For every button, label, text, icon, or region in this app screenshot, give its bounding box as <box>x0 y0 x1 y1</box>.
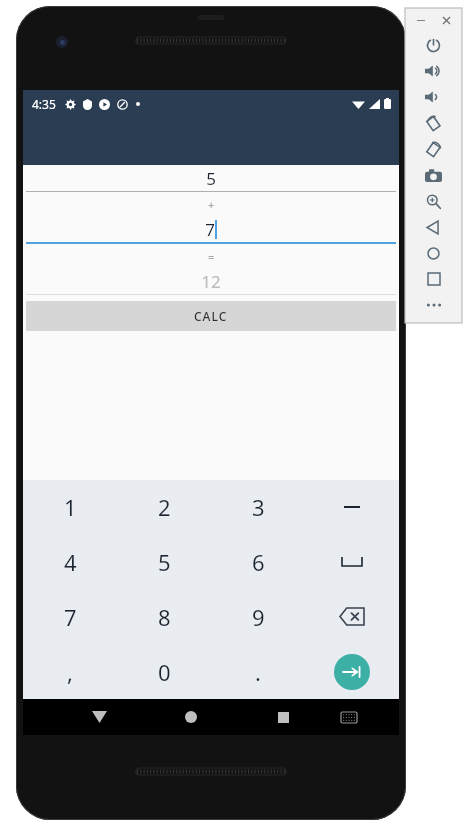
staticText: 6 <box>252 547 265 577</box>
button[interactable]: Zoom <box>405 188 462 214</box>
button[interactable]: Back <box>53 699 145 735</box>
staticText: 0 <box>158 657 171 687</box>
button[interactable]: Switch keyboard <box>329 699 369 735</box>
button[interactable]: More <box>405 292 462 318</box>
staticText: CALC <box>194 308 228 324</box>
staticText: 7 <box>64 602 77 632</box>
staticText: 4:35 <box>32 96 56 112</box>
button[interactable]: Backspace <box>305 589 399 644</box>
button[interactable]: Recent apps <box>237 699 329 735</box>
button[interactable]: 3 <box>211 480 305 534</box>
staticText: , <box>67 657 73 687</box>
button[interactable]: 4 <box>23 534 117 589</box>
staticText: 5 <box>158 547 171 577</box>
button[interactable]: Minimize <box>413 12 429 28</box>
button[interactable]: 9 <box>211 589 305 644</box>
button[interactable]: Power <box>405 32 462 58</box>
button[interactable]: 8 <box>117 589 211 644</box>
button[interactable]: Rotate right <box>405 136 462 162</box>
button[interactable]: 5 <box>117 534 211 589</box>
staticText: 7 <box>205 218 215 241</box>
button[interactable]: Back <box>405 214 462 240</box>
button[interactable]: . <box>211 644 305 699</box>
button[interactable]: Close <box>438 12 454 28</box>
staticText: . <box>255 657 261 687</box>
staticText: 1 <box>64 492 77 522</box>
button[interactable]: Volume up <box>405 58 462 84</box>
button[interactable]: 6 <box>211 534 305 589</box>
button[interactable]: 2 <box>117 480 211 534</box>
button[interactable]: Volume down <box>405 84 462 110</box>
button[interactable]: , <box>23 644 117 699</box>
button[interactable]: 1 <box>23 480 117 534</box>
button[interactable]: Overview <box>405 266 462 292</box>
staticText: 8 <box>158 602 171 632</box>
staticText: + <box>208 197 215 212</box>
button[interactable]: Space <box>305 534 399 589</box>
button[interactable]: Rotate left <box>405 110 462 136</box>
button[interactable]: Home <box>405 240 462 266</box>
button[interactable]: 0 <box>117 644 211 699</box>
staticText: 5 <box>206 167 216 190</box>
staticText: 2 <box>158 492 171 522</box>
button[interactable]: Minus <box>305 480 399 534</box>
staticText: 9 <box>252 602 265 632</box>
staticText: 12 <box>201 270 221 293</box>
button[interactable]: Enter <box>305 644 399 699</box>
staticText: 4 <box>64 547 77 577</box>
button[interactable]: Take screenshot <box>405 162 462 188</box>
button[interactable]: Home <box>145 699 237 735</box>
button[interactable]: 7 <box>23 589 117 644</box>
staticText: 3 <box>252 492 265 522</box>
staticText: = <box>208 249 215 264</box>
button[interactable]: CALC <box>26 301 396 331</box>
